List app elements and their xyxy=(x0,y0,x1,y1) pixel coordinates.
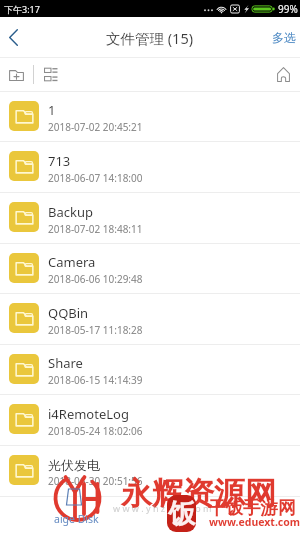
button[interactable]: Camera xyxy=(0,244,300,294)
staticText: Backup xyxy=(48,203,93,221)
button[interactable]: List view xyxy=(34,58,68,91)
button[interactable]: 713 xyxy=(0,142,300,193)
button[interactable]: 1 xyxy=(0,92,300,142)
staticText: 干饭手游网 xyxy=(208,497,296,519)
staticText: 2018-05-24 18:02:06 xyxy=(48,424,143,438)
button[interactable]: 光伏发电 xyxy=(0,446,300,497)
staticText: 永辉资源网 xyxy=(121,474,276,513)
staticText: www.eduext.com xyxy=(209,515,300,529)
staticText: 1 xyxy=(48,101,56,119)
staticText: 2018-06-15 14:14:39 xyxy=(48,373,143,387)
staticText: w w w . y h z y w . c o m xyxy=(113,502,212,514)
button[interactable]: New folder xyxy=(0,58,33,91)
staticText: 713 xyxy=(48,152,71,170)
staticText: 2018-06-06 10:29:48 xyxy=(48,272,143,286)
staticText: aige Disk xyxy=(54,512,99,526)
staticText: 99% xyxy=(278,2,298,16)
button[interactable]: 多选 xyxy=(272,17,296,58)
button[interactable]: Share xyxy=(0,345,300,395)
staticText: 光伏发电 xyxy=(48,457,100,473)
staticText: 下午3:17 xyxy=(4,3,40,15)
staticText: 2018-06-07 14:18:00 xyxy=(48,171,143,185)
button[interactable]: Back xyxy=(0,17,26,58)
button[interactable]: i4RemoteLog xyxy=(0,395,300,446)
staticText: 2018-07-02 20:45:21 xyxy=(48,120,143,134)
button[interactable]: Home xyxy=(266,58,300,91)
staticText: 2018-06-30 20:51:56 xyxy=(48,474,143,488)
staticText: 多选 xyxy=(272,30,296,45)
staticText: Camera xyxy=(48,253,96,271)
staticText: Share xyxy=(48,354,83,372)
staticText: 饭 xyxy=(168,497,195,531)
staticText: i4RemoteLog xyxy=(48,405,129,423)
button[interactable]: QQBin xyxy=(0,294,300,345)
staticText: QQBin xyxy=(48,304,89,322)
staticText: 2018-05-17 11:18:28 xyxy=(48,323,143,337)
staticText: 2018-07-02 18:48:11 xyxy=(48,222,143,236)
button[interactable]: Backup xyxy=(0,193,300,244)
staticText: 文件管理 (15) xyxy=(106,28,194,48)
